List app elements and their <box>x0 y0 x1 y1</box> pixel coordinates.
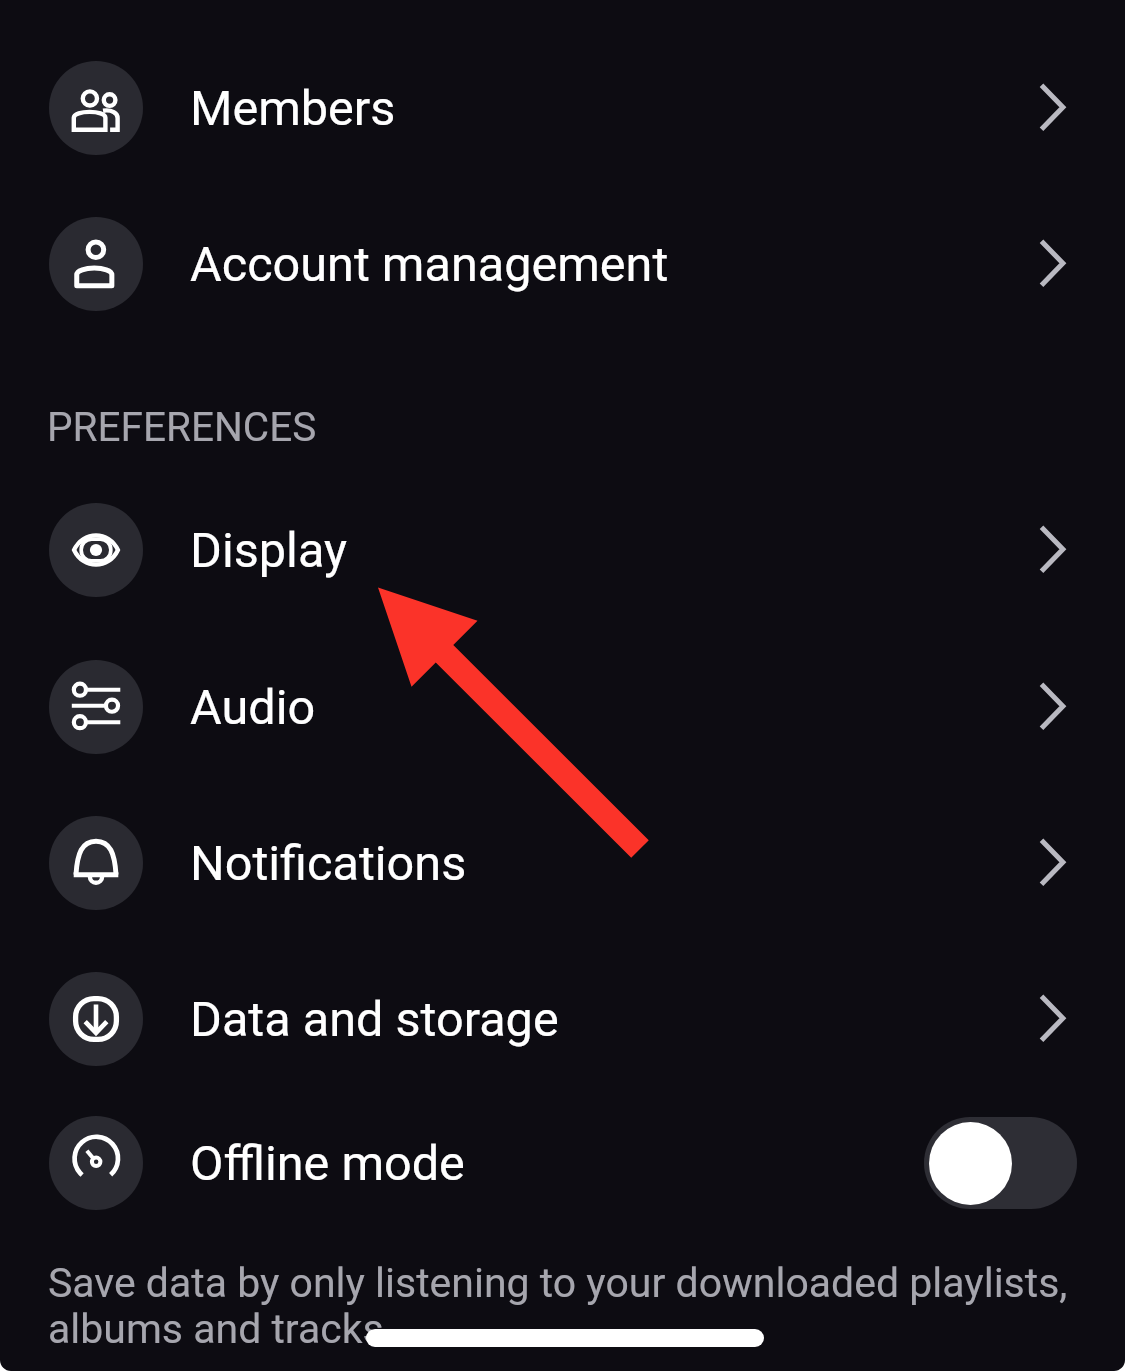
button[interactable]: Notifications <box>0 803 1125 923</box>
button[interactable]: Display <box>0 490 1125 610</box>
button[interactable]: Members <box>0 48 1125 168</box>
button[interactable]: Audio <box>0 647 1125 767</box>
staticText: Members <box>190 80 396 137</box>
button[interactable]: Data and storage <box>0 959 1125 1079</box>
staticText: Audio <box>190 679 316 736</box>
staticText: PREFERENCES <box>47 403 317 450</box>
staticText: Data and storage <box>190 991 559 1048</box>
staticText: Save data by only listening to your down… <box>48 1259 1125 1353</box>
button[interactable]: Offline mode <box>0 1103 1125 1223</box>
staticText: Display <box>190 522 347 579</box>
staticText: Offline mode <box>190 1135 465 1192</box>
staticText: Account management <box>190 236 669 293</box>
button[interactable]: Offline mode switch <box>924 1117 1077 1209</box>
staticText: Notifications <box>190 835 467 892</box>
button[interactable]: Account management <box>0 204 1125 324</box>
